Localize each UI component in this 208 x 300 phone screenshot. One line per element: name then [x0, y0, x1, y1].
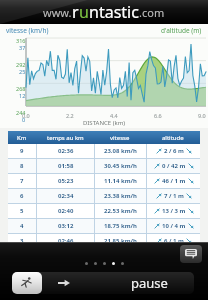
staticText: 30.45 km/h — [104, 162, 137, 170]
staticText: 02:40 — [58, 207, 74, 215]
button[interactable]: 3 — [8, 234, 200, 248]
staticText: 11.14 km/h — [104, 177, 137, 185]
staticText: 0 / 42 m — [162, 162, 186, 170]
staticText: 05:23 — [58, 177, 74, 185]
staticText: 02:46 — [58, 237, 74, 245]
staticText: d'altitude (m) — [161, 26, 202, 35]
staticText: 23.08 km/h — [104, 147, 137, 155]
staticText: 244 — [16, 109, 26, 116]
staticText: 4 — [20, 222, 24, 230]
button[interactable]: runtastic.com — [0, 0, 208, 24]
button[interactable]: Slide to pause — [14, 272, 194, 294]
staticText: 5 — [20, 207, 24, 215]
button[interactable]: 4 — [8, 219, 200, 233]
staticText: 6.6 — [154, 112, 162, 119]
staticText: 9.0 — [198, 112, 206, 119]
staticText: DISTANCE (km) — [0, 119, 208, 127]
staticText: 03:12 — [58, 222, 74, 230]
staticText: 13 / 3 m — [162, 207, 186, 215]
staticText: 292 — [16, 61, 26, 68]
staticText: vitesse — [110, 134, 130, 142]
staticText: pause — [131, 274, 168, 292]
staticText: 316 — [16, 37, 26, 44]
staticText: r — [72, 1, 79, 23]
staticText: 7 — [20, 177, 24, 185]
button[interactable]: 6 — [8, 189, 200, 203]
staticText: 37 — [19, 44, 26, 51]
staticText: 0.0 — [22, 112, 30, 119]
button[interactable]: Notes — [180, 245, 202, 263]
staticText: 02:34 — [58, 192, 74, 200]
staticText: 25 — [19, 68, 26, 75]
button[interactable]: 5 — [8, 204, 200, 218]
staticText: 6 / 1 m — [164, 237, 184, 245]
staticText: 2.2 — [66, 112, 74, 119]
staticText: altitude — [162, 134, 184, 142]
staticText: 02:36 — [58, 147, 74, 155]
staticText: 46 / 1 m — [162, 177, 186, 185]
staticText: 18.75 km/h — [104, 222, 137, 230]
button[interactable]: Activity — [12, 272, 42, 294]
staticText: 21.85 km/h — [104, 237, 137, 245]
staticText: temps au km — [47, 134, 84, 142]
button[interactable]: Speed and altitude chart — [0, 36, 208, 128]
staticText: Km — [17, 134, 27, 142]
button[interactable]: 7 — [8, 174, 200, 188]
button[interactable]: 9 — [8, 144, 200, 158]
staticText: 6 — [20, 192, 24, 200]
staticText: 22.53 km/h — [104, 207, 137, 215]
staticText: www. — [43, 5, 72, 20]
staticText: 01:58 — [58, 162, 74, 170]
staticText: 2 / 6 m — [164, 147, 184, 155]
staticText: u — [79, 1, 89, 23]
staticText: 10 / 4 m — [162, 222, 186, 230]
staticText: 0 — [22, 116, 26, 123]
staticText: 8 — [20, 162, 24, 170]
staticText: ntastic — [89, 1, 139, 23]
staticText: 268 — [16, 85, 26, 92]
staticText: 9 — [20, 147, 24, 155]
button[interactable]: 8 — [8, 159, 200, 173]
staticText: 4.4 — [110, 112, 118, 119]
staticText: vitesse (km/h) — [6, 26, 49, 35]
staticText: 23.38 km/h — [104, 192, 137, 200]
staticText: 3 — [20, 237, 24, 245]
staticText: 12 — [19, 92, 26, 99]
staticText: 7 / 1 m — [164, 192, 184, 200]
staticText: .com — [139, 5, 165, 20]
